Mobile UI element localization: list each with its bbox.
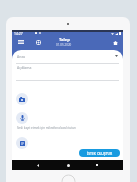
button[interactable]: Record voice bbox=[16, 112, 28, 124]
staticText: 14:27 bbox=[14, 31, 23, 36]
button[interactable]: New request bbox=[33, 37, 43, 47]
button[interactable]: Home bbox=[109, 37, 119, 47]
button[interactable]: Attach document bbox=[16, 137, 28, 149]
staticText: 01.05.2020 bbox=[56, 43, 72, 47]
button[interactable]: Back bbox=[34, 161, 42, 169]
button[interactable]: İSTEK OLUŞTUR bbox=[79, 149, 120, 157]
staticText: Arıza bbox=[17, 54, 25, 59]
staticText: İSTEK OLUŞTUR bbox=[87, 151, 113, 156]
staticText: Sesli kayıt etmek için mikrofona basılı … bbox=[17, 126, 76, 130]
button[interactable]: Recent apps bbox=[93, 161, 101, 169]
staticText: Açıklama bbox=[17, 65, 32, 70]
button[interactable]: Add photo bbox=[16, 93, 28, 105]
button[interactable]: Menu bbox=[16, 37, 26, 47]
button[interactable]: Home bbox=[64, 161, 72, 169]
staticText: Talep bbox=[59, 37, 70, 43]
